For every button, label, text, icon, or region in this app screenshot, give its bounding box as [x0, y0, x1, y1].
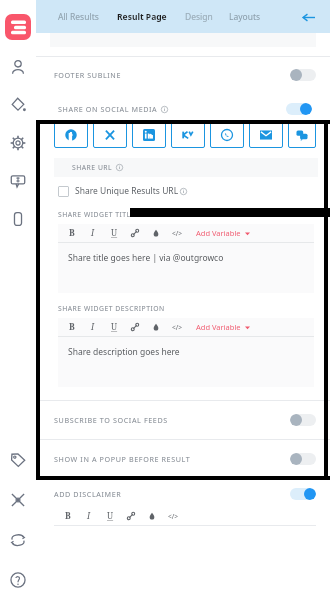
staticText: U — [111, 321, 118, 333]
button[interactable]: Facebook — [54, 122, 88, 148]
staticText: Share description goes here — [68, 346, 180, 358]
button[interactable]: Tools — [7, 489, 29, 511]
button[interactable]: SHOW IN A POPUP BEFORE RESULT — [36, 440, 330, 478]
button[interactable]: Email — [249, 122, 283, 148]
staticText: B — [65, 510, 71, 522]
staticText: I — [91, 227, 95, 239]
staticText: </> — [172, 323, 182, 332]
button[interactable]: Logo — [5, 14, 31, 40]
button[interactable]: Bold — [66, 227, 78, 239]
button[interactable]: Link — [129, 227, 141, 239]
staticText: Result Page — [117, 11, 167, 23]
button[interactable]: Underline — [104, 510, 116, 522]
button[interactable]: Design — [183, 7, 215, 27]
staticText: Design — [185, 11, 213, 23]
button[interactable]: Share description goes here — [58, 337, 314, 387]
button[interactable]: Sync — [7, 529, 29, 551]
button[interactable]: WhatsApp — [210, 122, 244, 148]
button[interactable]: Italic — [87, 227, 99, 239]
button[interactable]: Italic — [87, 321, 99, 333]
button[interactable]: LinkedIn — [132, 122, 166, 148]
button[interactable]: Off — [290, 414, 316, 426]
button[interactable]: Color — [146, 510, 158, 522]
staticText: I — [87, 510, 91, 522]
staticText: Layouts — [229, 11, 261, 23]
button[interactable]: On — [290, 488, 316, 500]
button[interactable]: Settings — [7, 132, 29, 154]
button[interactable]: Help — [7, 569, 29, 591]
button[interactable]: Code — [171, 227, 183, 239]
button[interactable]: On — [286, 103, 312, 115]
button[interactable]: ADD DISCLAIMER — [36, 488, 330, 500]
staticText: </> — [168, 512, 178, 521]
button[interactable]: Underline — [108, 227, 120, 239]
button[interactable]: SHARE URL — [54, 158, 318, 177]
button[interactable]: Underline — [108, 321, 120, 333]
button[interactable]: Color — [150, 227, 162, 239]
button[interactable]: Layouts — [227, 7, 263, 27]
button[interactable]: Code — [167, 510, 179, 522]
staticText: Add Variable — [196, 228, 241, 238]
staticText: SUBSCRIBE TO SOCIAL FEEDS — [54, 415, 168, 425]
button[interactable]: Add Variable — [194, 320, 252, 334]
staticText: B — [69, 227, 75, 239]
button[interactable]: Share title goes here | via @outgrowco — [58, 243, 314, 293]
staticText: </> — [172, 229, 182, 238]
button[interactable]: Share Unique Results URL — [58, 185, 326, 197]
staticText: I — [91, 321, 95, 333]
button[interactable]: Pricing — [7, 170, 29, 192]
button[interactable]: Code — [171, 321, 183, 333]
button[interactable]: SHARE ON SOCIAL MEDIA — [40, 103, 326, 115]
staticText: U — [111, 227, 118, 239]
button[interactable]: Link — [125, 510, 137, 522]
staticText: SHARE ON SOCIAL MEDIA — [58, 104, 158, 114]
staticText: SHARE URL — [72, 163, 113, 172]
button[interactable]: Off — [290, 453, 316, 465]
button[interactable]: Account — [7, 56, 29, 78]
button[interactable]: FOOTER SUBLINE — [36, 57, 330, 93]
button[interactable]: SUBSCRIBE TO SOCIAL FEEDS — [36, 401, 330, 439]
button[interactable]: SMS — [288, 122, 316, 148]
button[interactable]: Theme — [7, 94, 29, 116]
button[interactable]: Result Page — [115, 7, 169, 27]
staticText: SHARE WIDGET DESCRIPTION — [58, 304, 165, 313]
staticText: SHOW IN A POPUP BEFORE RESULT — [54, 454, 191, 464]
staticText: All Results — [58, 11, 99, 23]
staticText: SHARE WIDGET TITLE — [58, 210, 135, 219]
staticText: Share Unique Results URL — [75, 185, 179, 197]
staticText: B — [69, 321, 75, 333]
button[interactable]: All Results — [56, 7, 101, 27]
staticText: Share title goes here | via @outgrowco — [68, 252, 224, 264]
button[interactable]: Device — [7, 208, 29, 230]
button[interactable]: Add Variable — [194, 226, 252, 240]
button[interactable]: Italic — [83, 510, 95, 522]
button[interactable]: Color — [150, 321, 162, 333]
button[interactable]: Tags — [7, 449, 29, 471]
button[interactable]: Back — [298, 7, 318, 27]
staticText: Add Variable — [196, 322, 241, 332]
button[interactable]: VK — [171, 122, 205, 148]
button[interactable]: Link — [129, 321, 141, 333]
staticText: U — [107, 510, 114, 522]
staticText: ADD DISCLAIMER — [54, 489, 122, 499]
button[interactable]: Bold — [62, 510, 74, 522]
button[interactable]: Off — [290, 69, 316, 81]
button[interactable]: Bold — [66, 321, 78, 333]
button[interactable]: X — [93, 122, 127, 148]
staticText: FOOTER SUBLINE — [54, 70, 122, 80]
